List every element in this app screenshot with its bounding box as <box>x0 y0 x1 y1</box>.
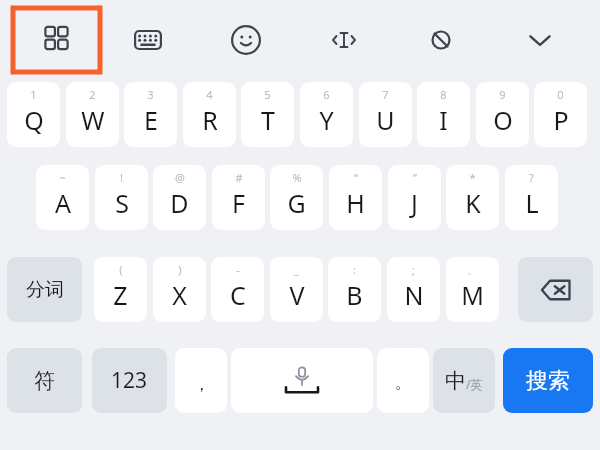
staticText: _ <box>294 262 299 277</box>
staticText: E <box>144 103 158 137</box>
button[interactable]: ; <box>387 257 440 322</box>
button[interactable]: ， <box>175 348 227 413</box>
staticText: 搜索 <box>526 367 570 395</box>
button[interactable]: Attach <box>413 12 469 68</box>
button[interactable]: Keyboard panels <box>13 8 100 72</box>
staticText: ( <box>119 262 123 277</box>
button[interactable]: 6 <box>300 82 353 147</box>
staticText: /英 <box>466 376 483 392</box>
button[interactable]: % <box>270 165 323 230</box>
staticText: ? <box>529 170 534 185</box>
staticText: 、 <box>467 263 478 277</box>
button[interactable]: ? <box>505 165 558 230</box>
staticText: Q <box>24 103 44 137</box>
staticText: 1 <box>30 87 37 102</box>
staticText: A <box>55 186 71 220</box>
staticText: G <box>287 186 306 220</box>
staticText: : <box>353 262 356 277</box>
staticText: ! <box>120 170 123 185</box>
staticText: J <box>411 186 418 220</box>
staticText: “ <box>354 170 358 185</box>
button[interactable]: Hide keyboard <box>512 12 568 68</box>
button[interactable]: 7 <box>359 82 412 147</box>
staticText: 9 <box>499 87 506 102</box>
button[interactable]: 符 <box>7 348 82 413</box>
staticText: X <box>172 278 187 312</box>
staticText: F <box>232 186 245 220</box>
staticText: T <box>261 103 275 137</box>
staticText: 6 <box>323 87 330 102</box>
staticText: 3 <box>147 87 154 102</box>
staticText: 8 <box>440 87 447 102</box>
staticText: R <box>202 103 218 137</box>
button[interactable]: ! <box>95 165 148 230</box>
staticText: H <box>346 186 365 220</box>
staticText: D <box>170 186 189 220</box>
staticText: - <box>236 262 240 277</box>
button[interactable]: 2 <box>66 82 119 147</box>
button[interactable]: 1 <box>7 82 60 147</box>
button[interactable]: 5 <box>241 82 294 147</box>
button[interactable]: ) <box>153 257 206 322</box>
button[interactable]: 、 <box>446 257 499 322</box>
staticText: B <box>346 278 363 312</box>
button[interactable]: 0 <box>534 82 587 147</box>
staticText: Z <box>113 278 128 312</box>
staticText: 0 <box>557 87 564 102</box>
staticText: 7 <box>382 87 389 102</box>
button[interactable]: 4 <box>183 82 236 147</box>
button[interactable]: Backspace <box>518 257 593 322</box>
staticText: I <box>439 103 448 137</box>
staticText: N <box>404 278 424 312</box>
staticText: S <box>115 186 129 220</box>
staticText: Y <box>319 103 334 137</box>
staticText: 符 <box>34 368 55 394</box>
staticText: 2 <box>89 87 96 102</box>
button[interactable]: 3 <box>124 82 177 147</box>
staticText: K <box>465 186 481 220</box>
staticText: * <box>469 170 476 185</box>
staticText: ~ <box>59 170 66 185</box>
staticText: 中 <box>445 368 466 394</box>
button[interactable]: ( <box>94 257 147 322</box>
button[interactable]: _ <box>270 257 323 322</box>
button[interactable]: ~ <box>36 165 89 230</box>
button[interactable]: : <box>328 257 381 322</box>
button[interactable]: # <box>212 165 265 230</box>
staticText: ; <box>412 262 415 277</box>
staticText: V <box>289 278 305 312</box>
staticText: W <box>81 103 105 137</box>
staticText: @ <box>175 170 185 185</box>
button[interactable]: 分词 <box>7 257 82 322</box>
staticText: 123 <box>111 366 148 395</box>
button[interactable]: 中 <box>433 348 495 413</box>
staticText: # <box>235 170 243 185</box>
staticText: O <box>493 103 513 137</box>
button[interactable]: Keyboard <box>120 12 176 68</box>
staticText: M <box>461 278 484 312</box>
staticText: % <box>292 170 302 185</box>
button[interactable]: Emoji <box>218 12 274 68</box>
staticText: ， <box>193 374 210 395</box>
staticText: P <box>553 103 569 137</box>
staticText: 。 <box>395 372 412 393</box>
staticText: ) <box>178 262 182 277</box>
button[interactable]: ” <box>388 165 441 230</box>
button[interactable]: 搜索 <box>503 348 593 413</box>
button[interactable]: - <box>211 257 264 322</box>
button[interactable]: Move cursor <box>316 12 372 68</box>
staticText: L <box>525 186 539 220</box>
staticText: 分词 <box>26 278 64 302</box>
button[interactable]: “ <box>329 165 382 230</box>
staticText: C <box>230 278 246 312</box>
button[interactable]: @ <box>153 165 206 230</box>
staticText: 5 <box>264 87 271 102</box>
button[interactable]: 123 <box>92 348 167 413</box>
staticText: 4 <box>206 87 213 102</box>
button[interactable]: * <box>446 165 499 230</box>
button[interactable]: 9 <box>476 82 529 147</box>
button[interactable]: 。 <box>377 348 429 413</box>
button[interactable]: Space <box>231 348 373 413</box>
staticText: U <box>376 103 395 137</box>
button[interactable]: 8 <box>417 82 470 147</box>
